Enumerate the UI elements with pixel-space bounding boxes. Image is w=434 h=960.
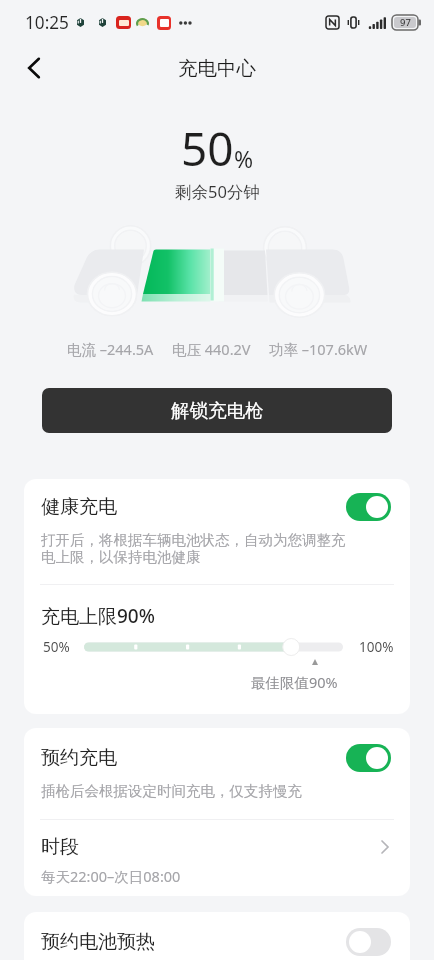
staticText: 打开后，将根据车辆电池状态，自动为您调整充电上限，以保持电池健康	[41, 531, 349, 566]
staticText: 充电上限90%	[41, 603, 155, 629]
staticText: 预约电池预热	[41, 930, 155, 954]
staticText: 充电中心	[178, 56, 256, 81]
staticText: 100%	[359, 638, 394, 656]
staticText: 电流 –244.5A	[67, 339, 154, 359]
staticText: 剩余50分钟	[175, 180, 260, 203]
staticText: 50	[181, 117, 234, 180]
staticText: 电压 440.2V	[172, 339, 251, 359]
staticText: 功率 –107.6kW	[269, 339, 368, 359]
staticText: 最佳限值90%	[251, 672, 338, 692]
button[interactable]: Toggle	[346, 493, 391, 521]
staticText: 97	[400, 16, 411, 29]
staticText: 50%	[43, 638, 70, 656]
staticText: %	[234, 143, 254, 174]
staticText: 预约充电	[41, 746, 117, 770]
staticText: 每天22:00–次日08:00	[41, 866, 181, 886]
staticText: 健康充电	[41, 495, 117, 519]
staticText: 时段	[41, 835, 79, 859]
button[interactable]: Back	[14, 48, 54, 88]
button[interactable]: 解锁充电枪	[42, 388, 392, 433]
staticText: 插枪后会根据设定时间充电，仅支持慢充	[41, 782, 302, 800]
staticText: 10:25	[25, 11, 69, 34]
button[interactable]: 时段	[24, 820, 410, 896]
button[interactable]: Toggle	[346, 928, 391, 956]
staticText: 解锁充电枪	[171, 399, 264, 422]
button[interactable]: Toggle	[346, 744, 391, 772]
